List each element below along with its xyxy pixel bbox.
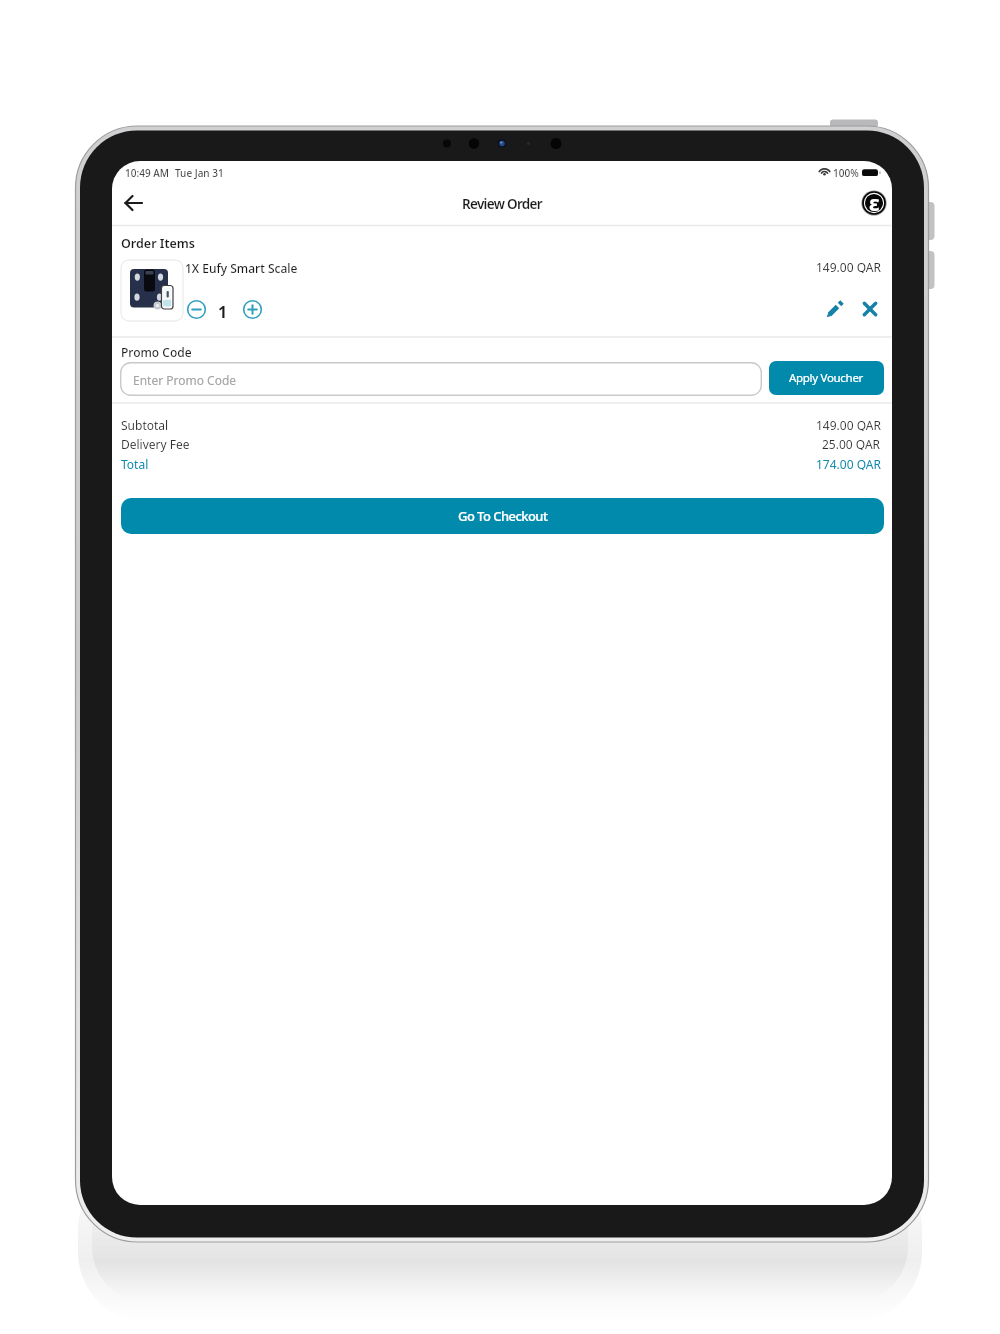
button[interactable] bbox=[118, 191, 150, 215]
staticText: 1 bbox=[218, 301, 228, 318]
staticText: Tue Jan 31 bbox=[175, 166, 224, 180]
staticText: Apply Voucher bbox=[789, 370, 864, 386]
staticText: 149.00 QAR bbox=[816, 259, 881, 273]
staticText: 25.00 QAR bbox=[822, 436, 881, 450]
staticText: Delivery Fee bbox=[121, 436, 190, 452]
staticText: Total bbox=[121, 456, 149, 472]
staticText: Enter Promo Code bbox=[133, 372, 237, 388]
staticText: 100% bbox=[833, 166, 859, 180]
button[interactable] bbox=[187, 300, 206, 319]
button[interactable]: Apply Voucher bbox=[769, 361, 884, 395]
staticText: Go To Checkout bbox=[458, 507, 548, 525]
staticText: ε bbox=[869, 189, 880, 216]
staticText: Promo Code bbox=[121, 344, 192, 360]
staticText: 1X Eufy Smart Scale bbox=[185, 260, 298, 276]
button[interactable] bbox=[858, 299, 882, 319]
staticText: Order Items bbox=[121, 235, 196, 252]
staticText: Subtotal bbox=[121, 417, 169, 433]
staticText: 10:49 AM bbox=[125, 166, 169, 180]
staticText: Review Order bbox=[462, 195, 542, 213]
button[interactable]: Go To Checkout bbox=[121, 498, 884, 534]
staticText: 149.00 QAR bbox=[816, 417, 881, 431]
button[interactable] bbox=[243, 300, 262, 319]
button[interactable] bbox=[121, 260, 183, 321]
button[interactable] bbox=[120, 362, 762, 396]
button[interactable] bbox=[824, 299, 848, 319]
staticText: 174.00 QAR bbox=[816, 456, 881, 470]
